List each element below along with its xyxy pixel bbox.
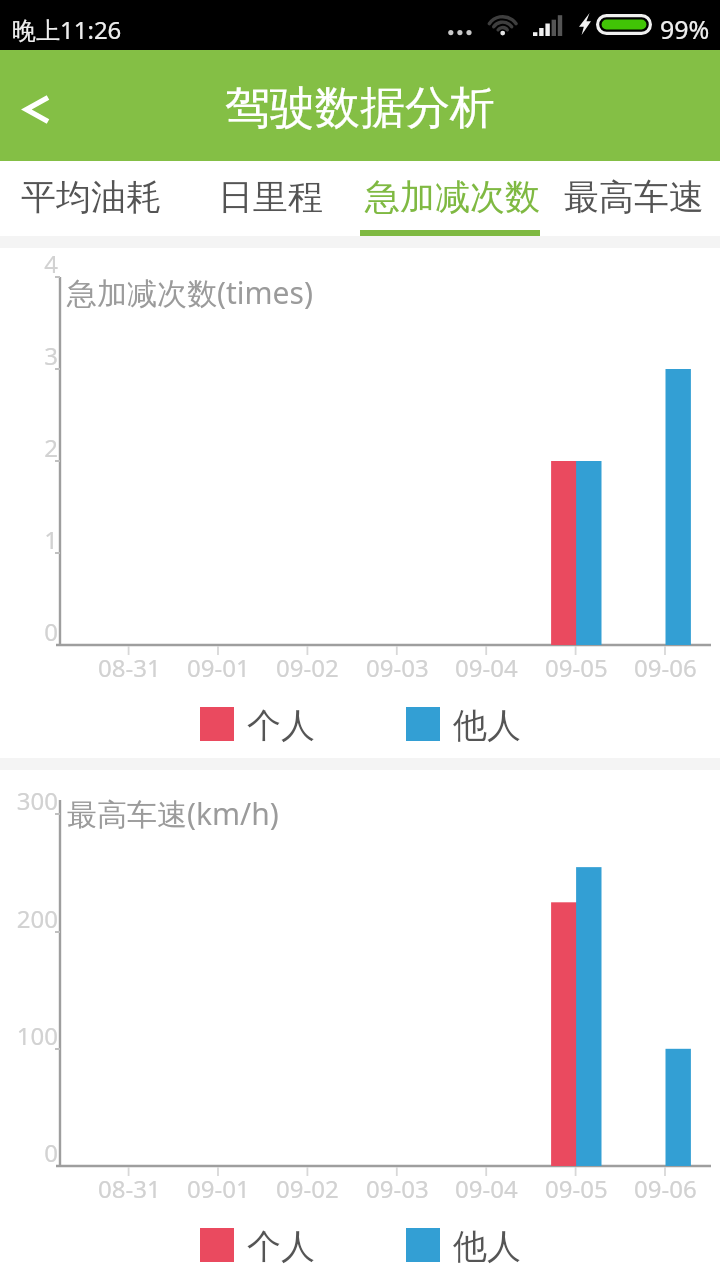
staticText: 急加减次数(times) [67, 272, 313, 313]
staticText: 2 [44, 431, 58, 459]
staticText: 200 [16, 902, 58, 930]
staticText: 99% [660, 12, 710, 46]
staticText: 09-05 [545, 651, 608, 679]
staticText: 08-31 [98, 651, 161, 679]
staticText: 他人 [453, 704, 521, 746]
staticText: 0 [44, 1136, 58, 1164]
button[interactable]: 他人 [406, 1224, 518, 1266]
button[interactable]: 个人 [200, 703, 312, 745]
staticText: 09-02 [276, 651, 339, 679]
staticText: 08-31 [98, 1172, 161, 1200]
staticText: 最高车速 [564, 175, 704, 219]
button[interactable]: 他人 [406, 703, 518, 745]
staticText: 1 [44, 523, 58, 551]
staticText: 平均油耗 [21, 175, 161, 219]
staticText: 急加减次数 [365, 175, 540, 219]
button[interactable]: 个人 [200, 1224, 312, 1266]
staticText: 09-04 [455, 651, 518, 679]
staticText: 09-01 [187, 651, 250, 679]
staticText: 驾驶数据分析 [225, 80, 495, 137]
button[interactable]: Back [0, 50, 80, 161]
staticText: 09-06 [634, 651, 697, 679]
staticText: 他人 [453, 1225, 521, 1267]
staticText: 09-04 [455, 1172, 518, 1200]
staticText: 09-03 [366, 1172, 429, 1200]
staticText: 09-06 [634, 1172, 697, 1200]
staticText: 4 [44, 247, 58, 275]
staticText: 个人 [247, 704, 315, 746]
button[interactable]: 平均油耗 [1, 161, 181, 236]
staticText: 09-05 [545, 1172, 608, 1200]
staticText: 日里程 [218, 175, 323, 219]
staticText: 09-03 [366, 651, 429, 679]
staticText: 09-01 [187, 1172, 250, 1200]
staticText: 0 [44, 615, 58, 643]
staticText: 09-02 [276, 1172, 339, 1200]
staticText: 300 [16, 784, 58, 812]
staticText: 100 [16, 1019, 58, 1047]
staticText: 晚上11:26 [12, 13, 122, 46]
button[interactable]: 日里程 [195, 161, 345, 236]
button[interactable]: 最高车速 [548, 161, 720, 236]
button[interactable]: 急加减次数 [355, 161, 550, 236]
staticText: 最高车速(km/h) [67, 793, 279, 834]
staticText: 3 [44, 339, 58, 367]
staticText: 个人 [247, 1225, 315, 1267]
